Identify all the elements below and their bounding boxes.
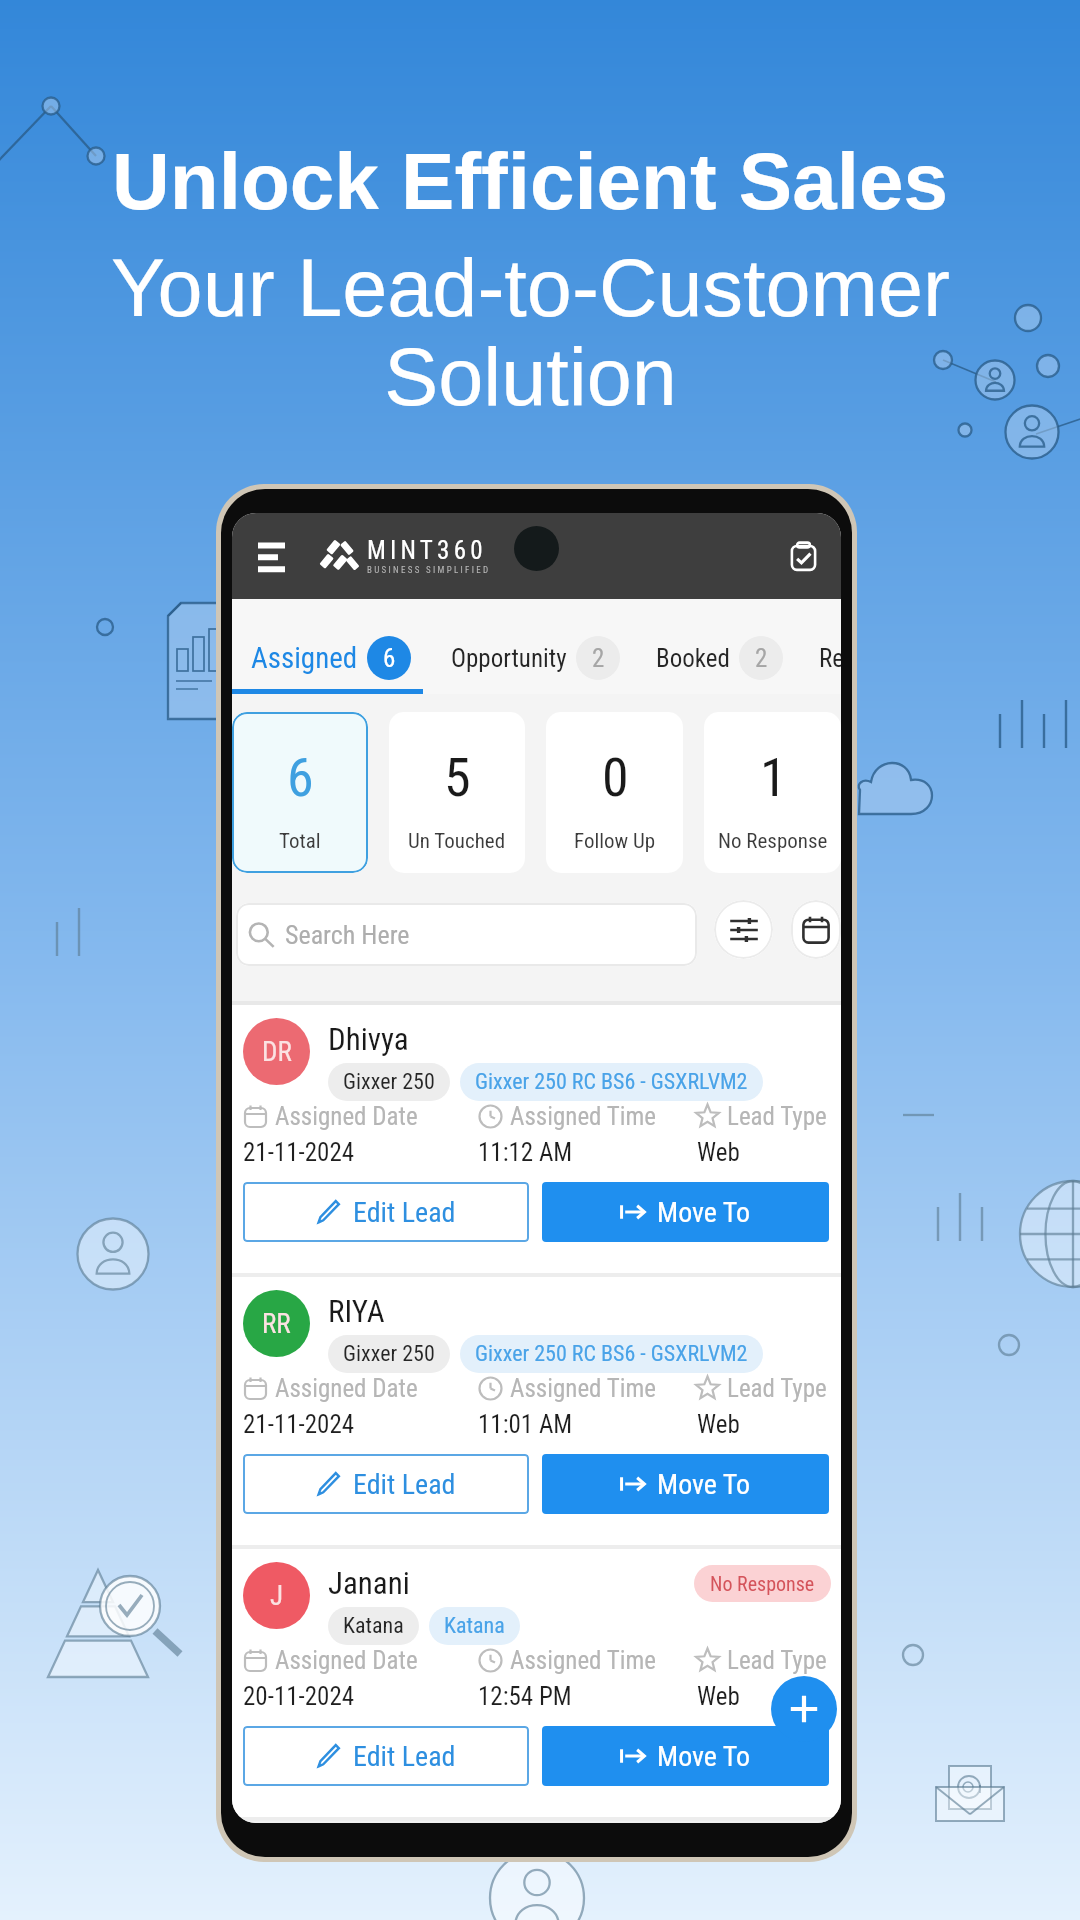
staticText: Un Touched bbox=[408, 829, 506, 854]
staticText: 11:12 AM bbox=[478, 1138, 573, 1167]
staticText: Gixxer 250 bbox=[343, 1341, 435, 1367]
staticText: Edit Lead bbox=[353, 1196, 456, 1229]
button[interactable]: Returned bbox=[805, 599, 841, 694]
staticText: Assigned Time bbox=[510, 1102, 657, 1131]
staticText: RIYA bbox=[328, 1293, 385, 1329]
staticText: Lead Type bbox=[727, 1102, 827, 1131]
staticText: 5 bbox=[444, 746, 471, 809]
button[interactable]: Add lead bbox=[771, 1676, 837, 1742]
staticText: 6 bbox=[383, 644, 396, 673]
staticText: Janani bbox=[328, 1565, 410, 1601]
staticText: Assigned Time bbox=[510, 1374, 657, 1403]
button[interactable]: Edit Lead bbox=[243, 1454, 529, 1514]
button[interactable]: DR bbox=[232, 1005, 841, 1273]
button[interactable]: Opportunity bbox=[437, 599, 642, 694]
staticText: Web bbox=[697, 1138, 740, 1167]
button[interactable]: Edit Lead bbox=[243, 1182, 529, 1242]
staticText: 21-11-2024 bbox=[243, 1138, 355, 1167]
staticText: Booked bbox=[656, 644, 730, 673]
staticText: Total bbox=[279, 829, 321, 854]
button[interactable]: Tasks bbox=[777, 530, 829, 582]
staticText: Gixxer 250 RC BS6 - GSXRLVM2 bbox=[475, 1341, 748, 1367]
staticText: Follow Up bbox=[574, 829, 656, 854]
staticText: J bbox=[270, 1580, 284, 1612]
button[interactable]: Booked bbox=[642, 599, 805, 694]
button[interactable]: Edit Lead bbox=[243, 1726, 529, 1786]
staticText: Web bbox=[697, 1682, 740, 1711]
button[interactable]: 6 bbox=[232, 712, 368, 873]
staticText: Gixxer 250 RC BS6 - GSXRLVM2 bbox=[475, 1069, 748, 1095]
staticText: 21-11-2024 bbox=[243, 1410, 355, 1439]
staticText: Assigned Date bbox=[275, 1646, 418, 1675]
staticText: Katana bbox=[444, 1613, 505, 1639]
staticText: Move To bbox=[657, 1740, 751, 1773]
staticText: 11:01 AM bbox=[478, 1410, 573, 1439]
staticText: Your Lead-to-Customer Solution bbox=[111, 243, 950, 422]
staticText: Move To bbox=[657, 1468, 751, 1501]
staticText: Assigned Date bbox=[275, 1374, 418, 1403]
button[interactable]: Assigned bbox=[232, 599, 437, 694]
staticText: Assigned Time bbox=[510, 1646, 657, 1675]
staticText: Lead Type bbox=[727, 1646, 827, 1675]
staticText: No Response bbox=[710, 1572, 815, 1595]
staticText: Dhivya bbox=[328, 1021, 409, 1057]
staticText: BUSINESS SIMPLIFIED bbox=[367, 565, 491, 576]
staticText: 12:54 PM bbox=[478, 1682, 572, 1711]
staticText: Web bbox=[697, 1410, 740, 1439]
staticText: 6 bbox=[287, 746, 314, 809]
button[interactable]: J bbox=[232, 1549, 841, 1817]
staticText: RR bbox=[262, 1308, 291, 1340]
staticText: Edit Lead bbox=[353, 1468, 456, 1501]
button[interactable]: Move To bbox=[542, 1454, 829, 1514]
button[interactable]: Move To bbox=[542, 1182, 829, 1242]
button[interactable]: 1 bbox=[704, 712, 841, 873]
button[interactable]: Calendar bbox=[791, 900, 841, 959]
button[interactable]: RR bbox=[232, 1277, 841, 1545]
button[interactable]: Search Here bbox=[236, 903, 697, 966]
staticText: 20-11-2024 bbox=[243, 1682, 355, 1711]
button[interactable]: 5 bbox=[389, 712, 525, 873]
staticText: 2 bbox=[755, 644, 768, 673]
staticText: Lead Type bbox=[727, 1374, 827, 1403]
staticText: Gixxer 250 bbox=[343, 1069, 435, 1095]
staticText: 1 bbox=[760, 746, 787, 809]
staticText: Katana bbox=[343, 1613, 404, 1639]
staticText: MINT360 bbox=[367, 536, 487, 565]
button[interactable]: Filter bbox=[714, 900, 773, 959]
staticText: 2 bbox=[592, 644, 605, 673]
staticText: Assigned Date bbox=[275, 1102, 418, 1131]
staticText: Assigned bbox=[251, 641, 358, 675]
staticText: No Response bbox=[718, 829, 828, 854]
staticText: Opportunity bbox=[451, 644, 567, 673]
staticText: Search Here bbox=[285, 920, 410, 950]
button[interactable]: 0 bbox=[546, 712, 683, 873]
staticText: DR bbox=[262, 1036, 292, 1068]
button[interactable]: Menu bbox=[242, 527, 300, 585]
staticText: Returned bbox=[819, 644, 841, 673]
staticText: 0 bbox=[602, 746, 629, 809]
button[interactable]: Move To bbox=[542, 1726, 829, 1786]
staticText: Move To bbox=[657, 1196, 751, 1229]
staticText: Edit Lead bbox=[353, 1740, 456, 1773]
staticText: Unlock Efficient Sales bbox=[112, 137, 948, 226]
